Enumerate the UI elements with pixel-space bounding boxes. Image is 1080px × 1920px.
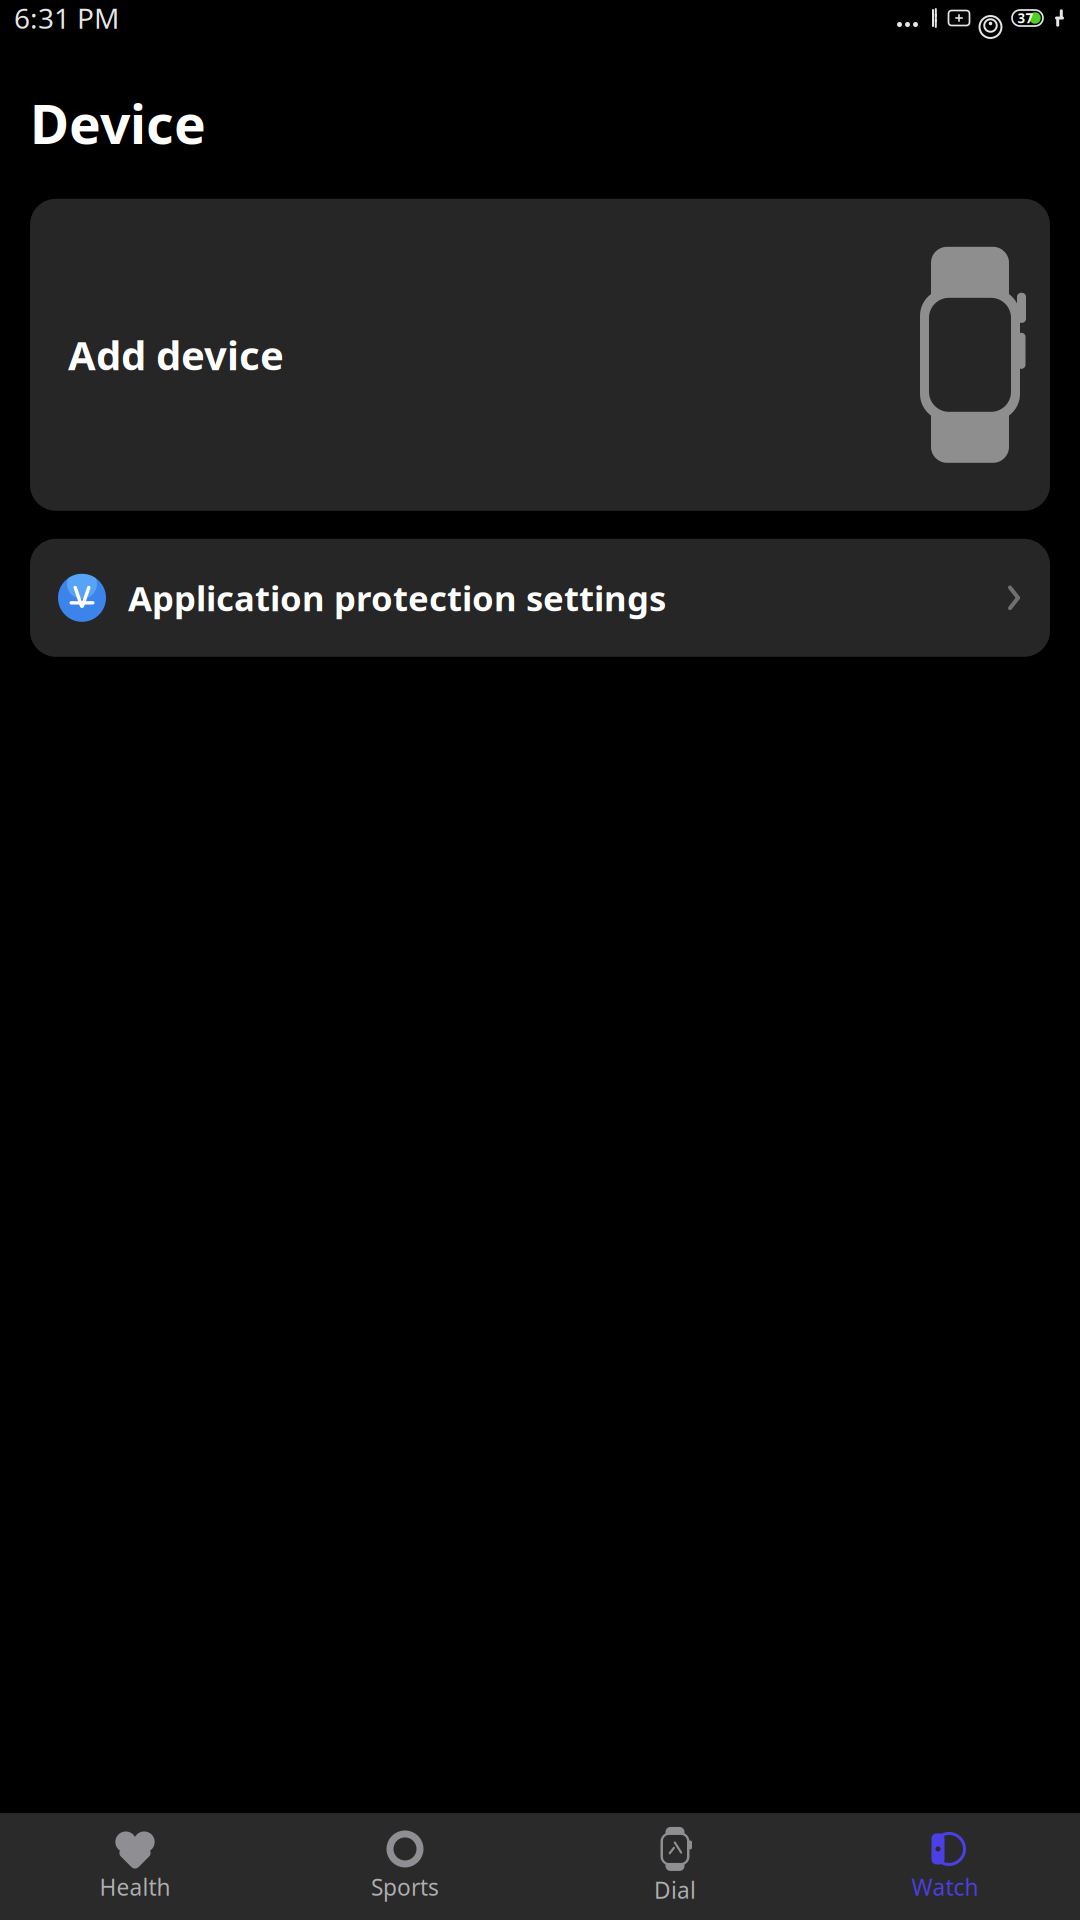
button[interactable]: Application protection settings: [30, 539, 1050, 657]
button[interactable]: Dial: [540, 1819, 810, 1915]
button[interactable]: Watch: [810, 1822, 1080, 1912]
button[interactable]: Health: [0, 1822, 270, 1912]
staticText: Watch: [911, 1872, 978, 1902]
staticText: Device: [30, 88, 206, 159]
staticText: 37: [1017, 9, 1033, 27]
staticText: Dial: [654, 1875, 696, 1905]
staticText: Health: [99, 1872, 170, 1902]
staticText: Sports: [371, 1872, 439, 1902]
button[interactable]: Add device: [30, 199, 1050, 511]
staticText: Application protection settings: [128, 575, 666, 621]
staticText: Add device: [68, 328, 284, 381]
staticText: 6:31 PM: [14, 0, 119, 37]
button[interactable]: Sports: [270, 1822, 540, 1912]
